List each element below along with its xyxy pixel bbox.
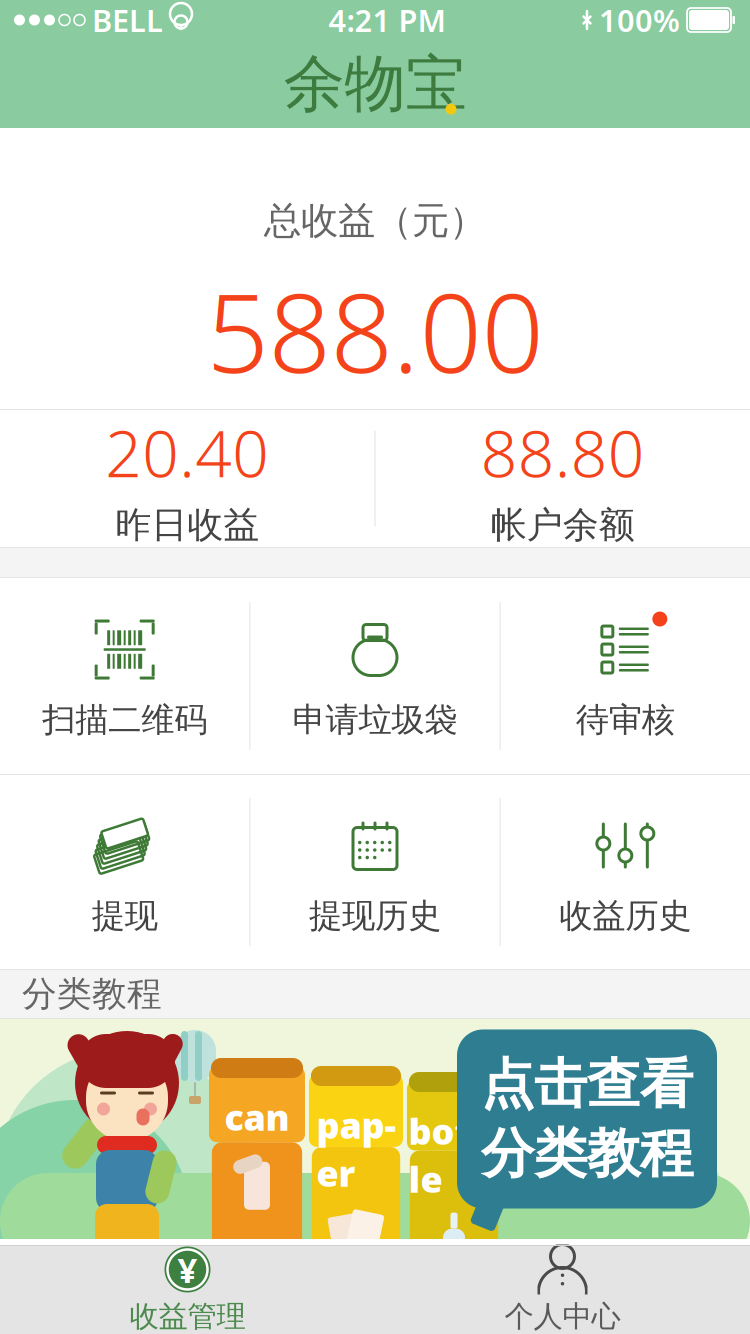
- staticText: 分类教程: [481, 1121, 693, 1186]
- staticText: 提现历史: [309, 895, 441, 936]
- button[interactable]: ¥: [0, 1245, 375, 1334]
- staticText: 点击查看: [481, 1051, 693, 1117]
- button[interactable]: 待审核: [501, 578, 750, 774]
- staticText: paper: [316, 1101, 395, 1197]
- staticText: 100%: [599, 0, 680, 40]
- staticText: 20.40: [105, 410, 269, 495]
- button[interactable]: 提现历史: [250, 774, 500, 970]
- staticText: 收益管理: [129, 1298, 245, 1334]
- staticText: 分类教程: [22, 973, 162, 1015]
- staticText: BELL: [92, 0, 163, 40]
- button[interactable]: 分类教程 banner: [0, 1019, 750, 1239]
- button[interactable]: 收益历史: [501, 774, 750, 970]
- button[interactable]: 申请垃圾袋: [250, 578, 500, 774]
- staticText: 个人中心: [504, 1298, 620, 1334]
- staticText: ¥: [177, 1246, 197, 1292]
- button[interactable]: 88.80: [375, 410, 750, 547]
- button[interactable]: 个人中心: [375, 1245, 750, 1334]
- staticText: 收益历史: [559, 895, 691, 936]
- button[interactable]: 提现: [0, 774, 249, 970]
- button[interactable]: 扫描二维码: [0, 578, 249, 774]
- staticText: 总收益（元）: [264, 198, 486, 244]
- staticText: 余物宝: [283, 46, 466, 122]
- staticText: 588.00: [206, 258, 543, 403]
- staticText: 待审核: [576, 699, 675, 740]
- button[interactable]: 点击查看分类教程: [457, 1029, 717, 1208]
- staticText: 4:21 PM: [328, 0, 445, 40]
- staticText: 申请垃圾袋: [292, 699, 457, 740]
- staticText: 88.80: [481, 410, 645, 495]
- staticText: 提现: [92, 895, 158, 936]
- staticText: 扫描二维码: [42, 699, 207, 740]
- button[interactable]: 20.40: [0, 410, 374, 547]
- staticText: can: [224, 1093, 289, 1141]
- staticText: bottle: [408, 1107, 499, 1203]
- staticText: 昨日收益: [115, 503, 259, 547]
- staticText: 帐户余额: [491, 503, 635, 547]
